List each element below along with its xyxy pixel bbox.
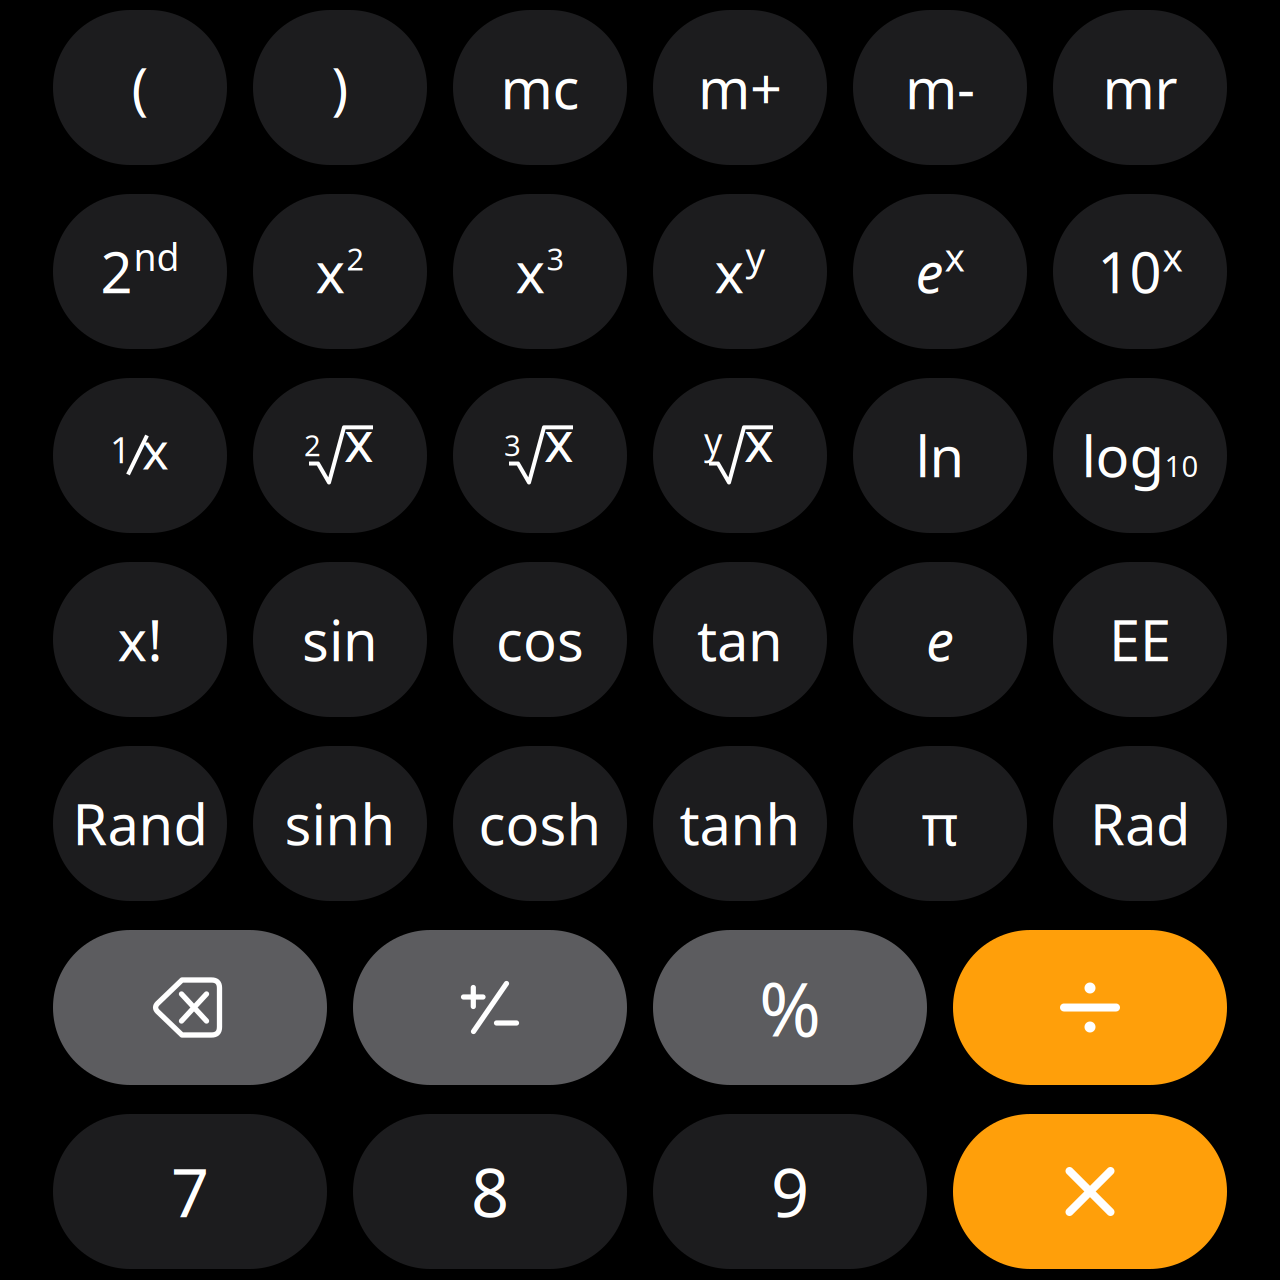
staticText: ) [331, 50, 348, 125]
button[interactable]: Divide [953, 930, 1227, 1085]
staticText: x [714, 234, 744, 309]
staticText: x [344, 403, 374, 477]
button[interactable]: square root of x [253, 378, 427, 533]
staticText: x [744, 403, 774, 477]
staticText: x [544, 403, 574, 477]
button[interactable]: EE [1053, 562, 1227, 717]
staticText: sinh [284, 786, 395, 861]
button[interactable]: tanh [653, 746, 827, 901]
button[interactable]: m- [853, 10, 1027, 165]
staticText: 1 [110, 425, 131, 473]
button[interactable]: mr [1053, 10, 1227, 165]
staticText: nd [133, 232, 179, 281]
staticText: 2 [100, 234, 132, 309]
staticText: x [1162, 231, 1182, 282]
staticText: mc [500, 50, 579, 125]
staticText: x [142, 416, 169, 483]
button[interactable]: Delete [53, 930, 327, 1085]
staticText: 3 [504, 425, 521, 464]
staticText: mr [1102, 50, 1177, 125]
button[interactable]: π [853, 746, 1027, 901]
button[interactable]: e [853, 562, 1027, 717]
staticText: e [915, 234, 943, 309]
button[interactable]: Rad [1053, 746, 1227, 901]
staticText: e [926, 602, 954, 677]
button[interactable]: log base 10 [1053, 378, 1227, 533]
staticText: x [315, 234, 345, 309]
button[interactable]: e to the x [853, 194, 1027, 349]
button[interactable]: ten to the x [1053, 194, 1227, 349]
button[interactable]: cosh [453, 746, 627, 901]
button[interactable]: tan [653, 562, 827, 717]
staticText: cos [496, 602, 584, 677]
staticText: sin [302, 602, 378, 677]
staticText: log [1081, 418, 1163, 493]
staticText: 10 [1164, 446, 1198, 485]
button[interactable]: % [653, 930, 927, 1085]
staticText: tan [697, 602, 783, 677]
staticText: ( [131, 50, 148, 125]
staticText: 9 [771, 1147, 809, 1236]
button[interactable]: cube root of x [453, 378, 627, 533]
staticText: Rand [72, 786, 207, 861]
staticText: tanh [679, 786, 800, 861]
staticText: x [944, 231, 964, 282]
staticText: y [745, 230, 765, 281]
button[interactable]: 8 [353, 1114, 627, 1269]
button[interactable]: x cubed [453, 194, 627, 349]
button[interactable]: Multiply [953, 1114, 1227, 1269]
staticText: 2 [346, 238, 364, 279]
staticText: y [704, 416, 722, 464]
button[interactable]: sinh [253, 746, 427, 901]
staticText: 10 [1097, 234, 1161, 309]
staticText: Rad [1090, 786, 1190, 861]
button[interactable]: 9 [653, 1114, 927, 1269]
button[interactable]: ln [853, 378, 1027, 533]
staticText: m+ [698, 50, 782, 125]
staticText: EE [1109, 602, 1171, 677]
button[interactable]: sin [253, 562, 427, 717]
button[interactable]: x! [53, 562, 227, 717]
staticText: m- [905, 50, 975, 125]
staticText: 2 [304, 425, 321, 464]
button[interactable]: x to the power y [653, 194, 827, 349]
staticText: % [759, 958, 821, 1057]
staticText: π [921, 786, 958, 861]
button[interactable]: Rand [53, 746, 227, 901]
button[interactable]: Plus minus [353, 930, 627, 1085]
button[interactable]: ) [253, 10, 427, 165]
staticText: ln [915, 418, 964, 493]
button[interactable]: 7 [53, 1114, 327, 1269]
button[interactable]: mc [453, 10, 627, 165]
staticText: 3 [546, 238, 564, 279]
staticText: 8 [471, 1147, 509, 1236]
staticText: x! [117, 602, 162, 677]
button[interactable]: 2nd [53, 194, 227, 349]
button[interactable]: m+ [653, 10, 827, 165]
button[interactable]: cos [453, 562, 627, 717]
button[interactable]: y root of x [653, 378, 827, 533]
button[interactable]: one over x [53, 378, 227, 533]
button[interactable]: ( [53, 10, 227, 165]
staticText: cosh [478, 786, 601, 861]
staticText: 7 [171, 1147, 209, 1236]
staticText: x [515, 234, 545, 309]
button[interactable]: x squared [253, 194, 427, 349]
